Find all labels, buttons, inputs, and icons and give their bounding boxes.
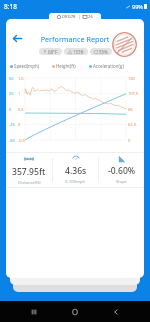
staticText: -0.60%	[108, 165, 136, 177]
staticText: -0.5	[18, 138, 25, 143]
button[interactable]: Back	[109, 305, 123, 319]
staticText: 1	[18, 91, 21, 96]
staticText: 357.95ft	[12, 166, 46, 178]
staticText: 26	[88, 14, 93, 20]
staticText: 0-100mph	[65, 179, 86, 185]
staticText: 1.5	[18, 76, 24, 81]
button[interactable]: Home	[68, 305, 82, 319]
staticText: 0.5	[18, 107, 24, 112]
button[interactable]: 55%	[90, 48, 112, 55]
staticText: 0	[18, 122, 21, 127]
staticText: 85	[128, 107, 133, 112]
staticText: 8:18	[4, 2, 17, 11]
staticText: 0	[128, 138, 131, 143]
staticText: 130	[128, 76, 135, 81]
button[interactable]: 68°F	[39, 48, 62, 55]
staticText: 55%	[99, 49, 108, 55]
staticText: -50	[9, 138, 15, 143]
staticText: 62.5	[128, 122, 136, 127]
staticText: 50	[9, 76, 14, 81]
staticText: DRG78	[62, 14, 76, 20]
staticText: 25	[9, 91, 14, 96]
staticText: 107.5	[128, 91, 139, 96]
button[interactable]: 357.95ft	[6, 153, 52, 187]
button[interactable]: -0.60%	[99, 153, 144, 187]
button[interactable]: 153ft	[64, 48, 88, 55]
staticText: 4.36s	[65, 165, 87, 177]
staticText: -25	[9, 122, 15, 127]
staticText: 0	[9, 107, 12, 112]
staticText: Acceleration(g)	[93, 63, 124, 69]
staticText: Performance Report	[6, 34, 144, 44]
staticText: Speed(mph)	[14, 63, 39, 69]
button[interactable]: Recent apps	[27, 305, 41, 319]
button[interactable]: DRG78	[49, 13, 101, 21]
staticText: 99%	[132, 3, 143, 10]
staticText: 68°F	[48, 49, 58, 55]
staticText: Height(ft)	[56, 63, 76, 69]
staticText: 153ft	[73, 49, 84, 55]
staticText: Distance(ft)	[18, 180, 41, 186]
button[interactable]: 4.36s	[53, 153, 98, 187]
staticText: Slope	[116, 179, 127, 185]
button[interactable]: Back	[10, 31, 24, 45]
